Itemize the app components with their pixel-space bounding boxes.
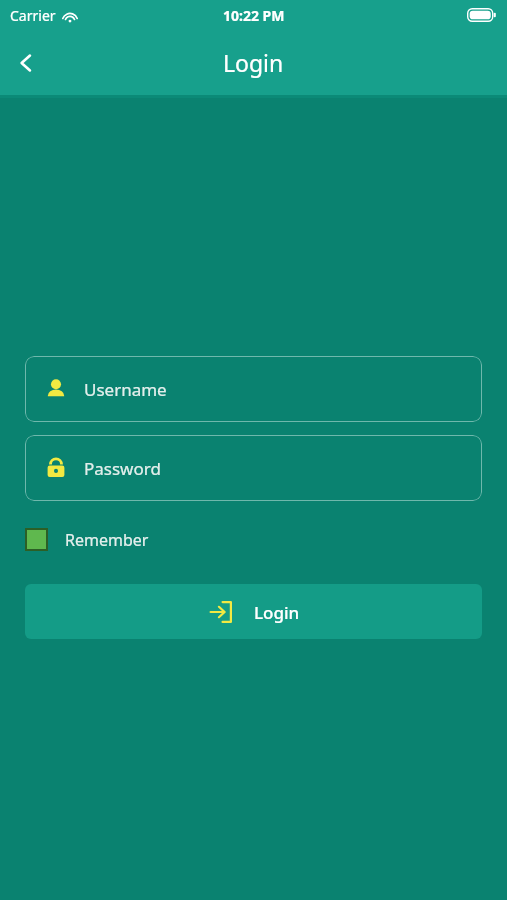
button[interactable]: Remember (25, 528, 149, 551)
button[interactable]: Username (25, 356, 482, 422)
button[interactable]: Back (0, 37, 52, 89)
staticText: Login (223, 47, 284, 78)
staticText: 10:22 PM (223, 6, 285, 25)
staticText: Login (254, 601, 300, 624)
staticText: Username (84, 378, 167, 401)
staticText: Carrier (10, 6, 56, 25)
button[interactable]: Password (25, 435, 482, 501)
staticText: Password (84, 457, 161, 480)
button[interactable]: Login (25, 584, 482, 639)
staticText: Remember (65, 529, 149, 551)
